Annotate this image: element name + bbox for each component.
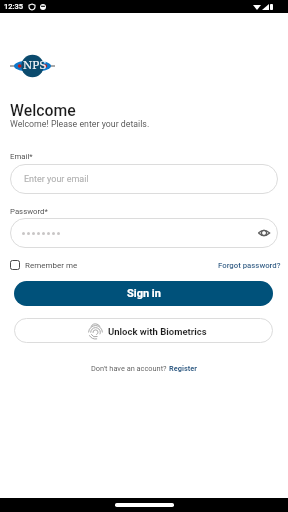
button[interactable]: Enter your email — [10, 164, 278, 194]
button[interactable]: Show password — [256, 225, 272, 241]
button[interactable]: Unlock with Biometrics — [14, 318, 273, 343]
button[interactable]: Sign in — [14, 281, 273, 306]
button[interactable]: Register — [169, 364, 197, 373]
staticText: Password* — [10, 207, 48, 216]
staticText: Email* — [10, 152, 33, 161]
button[interactable]: Show password — [10, 218, 278, 248]
staticText: Sign in — [127, 287, 161, 300]
staticText: Forgot password? — [218, 261, 281, 270]
staticText: Enter your email — [24, 174, 89, 185]
staticText: Welcome! Please enter your details. — [10, 119, 150, 129]
staticText: NPS — [23, 59, 47, 71]
staticText: Welcome — [10, 101, 76, 120]
staticText: Unlock with Biometrics — [108, 326, 207, 337]
button[interactable]: Forgot password? — [218, 261, 281, 270]
staticText: Don't have an account? — [91, 364, 169, 373]
staticText: Register — [169, 364, 197, 373]
staticText: Remember me — [25, 261, 78, 270]
staticText: 12:35 — [4, 2, 24, 11]
button[interactable]: Remember me — [10, 260, 78, 270]
